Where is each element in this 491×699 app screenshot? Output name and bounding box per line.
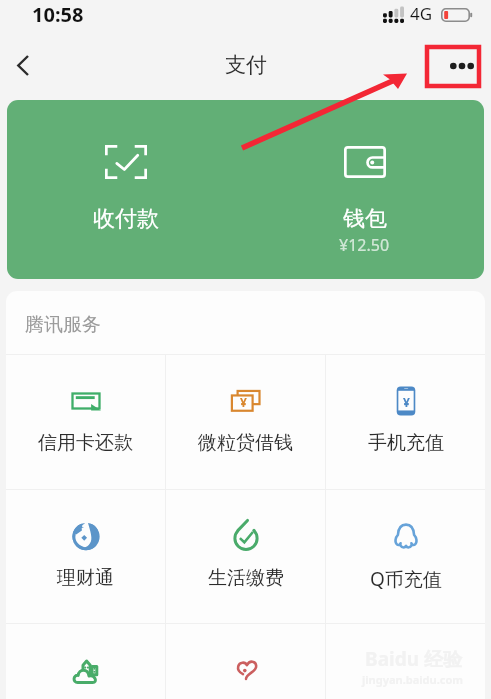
button[interactable]: Back xyxy=(0,41,46,89)
staticText: 生活缴费 xyxy=(208,566,284,590)
staticText: ¥12.50 xyxy=(339,234,390,256)
button[interactable]: 生活缴费 xyxy=(166,490,325,623)
button[interactable]: Q币充值 xyxy=(326,490,485,623)
button[interactable]: 理财通 xyxy=(6,490,165,623)
staticText: 10:58 xyxy=(32,1,84,28)
staticText: 腾讯服务 xyxy=(25,313,101,337)
staticText: Baidu 经验 xyxy=(365,646,462,672)
staticText: 4G xyxy=(410,2,433,25)
staticText: 手机充值 xyxy=(368,431,444,455)
staticText: ¥ xyxy=(403,394,410,410)
button[interactable]: 收付款 xyxy=(7,100,245,279)
staticText: 钱包 xyxy=(343,205,387,233)
button[interactable]: 钱包 xyxy=(245,100,484,279)
button[interactable]: More options xyxy=(433,44,491,88)
staticText: ¥ xyxy=(240,394,247,410)
button[interactable]: 城市服务 xyxy=(6,624,165,699)
button[interactable]: 服务 xyxy=(326,624,485,699)
staticText: 支付 xyxy=(225,52,267,78)
button[interactable]: 腾讯公益 xyxy=(166,624,325,699)
staticText: 信用卡还款 xyxy=(38,431,133,455)
staticText: jingyan.baidu.com xyxy=(362,672,464,687)
button[interactable]: 微粒贷借钱 xyxy=(166,355,325,489)
staticText: 微粒贷借钱 xyxy=(198,431,293,455)
staticText: 理财通 xyxy=(57,566,114,590)
staticText: 收付款 xyxy=(93,205,159,233)
button[interactable]: 手机充值 xyxy=(326,355,485,489)
button[interactable]: 信用卡还款 xyxy=(6,355,165,489)
staticText: Q币充值 xyxy=(370,566,442,592)
